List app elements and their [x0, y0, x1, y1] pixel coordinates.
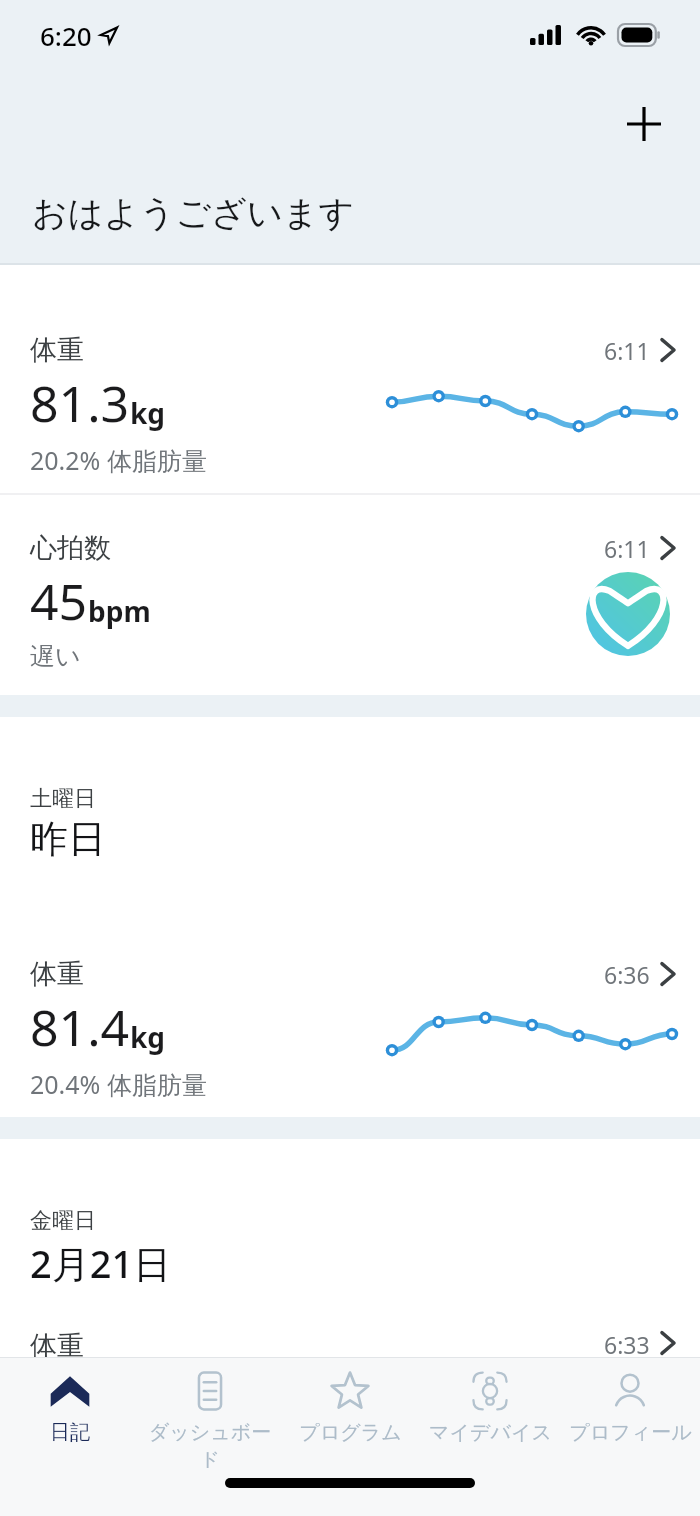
button[interactable]: マイデバイス	[420, 1358, 560, 1468]
staticText: ダッシュボード	[140, 1420, 280, 1468]
staticText: 心拍数	[30, 531, 111, 565]
button[interactable]: 体重	[0, 1315, 700, 1357]
staticText: 2月21日	[30, 1237, 172, 1289]
staticText: おはようございます	[32, 191, 355, 235]
staticText: 6:20	[40, 18, 92, 53]
staticText: kg	[130, 1018, 166, 1056]
staticText: 遅い	[30, 641, 81, 672]
button[interactable]: 体重	[0, 889, 700, 1117]
staticText: 金曜日	[30, 1207, 96, 1235]
staticText: 20.2% 体脂肪量	[30, 443, 207, 477]
staticText: プロフィール	[569, 1420, 692, 1445]
button[interactable]: 体重	[0, 265, 700, 493]
staticText: 6:33	[604, 1329, 650, 1357]
staticText: 81.3	[30, 369, 130, 437]
button[interactable]: Add	[610, 90, 678, 158]
staticText: bpm	[88, 592, 151, 630]
staticText: 体重	[30, 957, 84, 991]
staticText: 45	[30, 567, 88, 635]
button[interactable]: 心拍数	[0, 495, 700, 695]
staticText: マイデバイス	[429, 1420, 552, 1445]
staticText: 土曜日	[30, 785, 96, 813]
staticText: 体重	[30, 1329, 84, 1357]
staticText: 81.4	[30, 993, 130, 1061]
staticText: 体重	[30, 333, 84, 367]
button[interactable]: プログラム	[280, 1358, 420, 1468]
staticText: 6:36	[604, 959, 650, 990]
staticText: 6:11	[604, 335, 650, 366]
button[interactable]: プロフィール	[560, 1358, 700, 1468]
button[interactable]: ダッシュボード	[140, 1358, 280, 1468]
staticText: 6:11	[604, 533, 650, 564]
staticText: 昨日	[30, 815, 106, 863]
staticText: 20.4% 体脂肪量	[30, 1067, 207, 1101]
staticText: 日記	[50, 1420, 90, 1445]
staticText: kg	[130, 394, 166, 432]
button[interactable]: 日記	[0, 1358, 140, 1468]
staticText: プログラム	[299, 1420, 402, 1445]
